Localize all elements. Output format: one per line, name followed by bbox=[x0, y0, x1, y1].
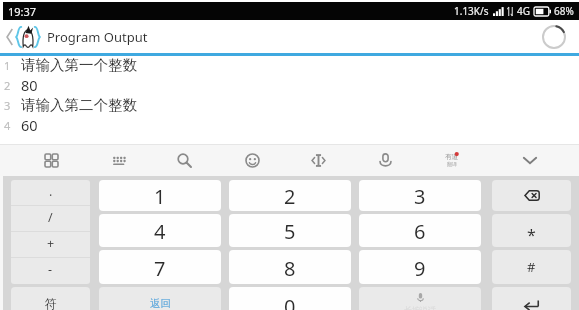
staticText: 符 bbox=[45, 296, 57, 310]
staticText: 19:37 bbox=[8, 4, 37, 19]
staticText: 2 bbox=[4, 78, 11, 93]
button[interactable]: 3 bbox=[359, 180, 481, 211]
button[interactable]: - bbox=[11, 258, 90, 283]
staticText: Program Output bbox=[47, 28, 148, 46]
staticText: 6 bbox=[414, 218, 426, 245]
button[interactable]: Space / voice input bbox=[359, 287, 481, 310]
button[interactable]: * bbox=[492, 214, 571, 247]
staticText: 5 bbox=[284, 218, 296, 245]
button[interactable]: 8 bbox=[229, 250, 351, 284]
staticText: 4G bbox=[517, 4, 530, 18]
button[interactable]: Sticker store bbox=[435, 144, 467, 176]
staticText: 2 bbox=[284, 183, 296, 210]
staticText: 3 bbox=[414, 183, 426, 210]
button[interactable]: Back bbox=[6, 20, 42, 53]
button[interactable]: 符 bbox=[11, 287, 90, 310]
staticText: 4 bbox=[154, 218, 166, 245]
button[interactable]: . bbox=[11, 180, 90, 205]
staticText: 7 bbox=[154, 255, 166, 282]
button[interactable]: 9 bbox=[359, 250, 481, 284]
staticText: 4 bbox=[4, 118, 11, 133]
button[interactable]: Search bbox=[168, 144, 200, 176]
staticText: 60 bbox=[21, 115, 38, 135]
button[interactable]: Enter bbox=[492, 287, 571, 310]
staticText: 8 bbox=[284, 255, 296, 282]
button[interactable]: # bbox=[492, 250, 571, 284]
button[interactable]: 0 bbox=[229, 287, 351, 310]
staticText: . bbox=[49, 183, 53, 200]
button[interactable]: Apps bbox=[35, 144, 67, 176]
staticText: 请输入第二个整数 bbox=[21, 96, 137, 114]
button[interactable]: 2 bbox=[229, 180, 351, 211]
button[interactable]: Backspace bbox=[492, 180, 571, 211]
button[interactable]: Loading bbox=[538, 21, 570, 53]
staticText: 长按说话 bbox=[404, 305, 436, 310]
staticText: 1 bbox=[154, 183, 166, 210]
staticText: 3 bbox=[4, 98, 11, 113]
button[interactable]: Voice input bbox=[369, 144, 401, 176]
button[interactable]: + bbox=[11, 232, 90, 257]
staticText: - bbox=[48, 261, 53, 278]
button[interactable]: 6 bbox=[359, 214, 481, 247]
button[interactable]: / bbox=[11, 206, 90, 231]
staticText: 1 bbox=[4, 58, 11, 73]
button[interactable]: Emoji bbox=[236, 144, 268, 176]
staticText: 返回 bbox=[150, 297, 171, 310]
staticText: 68% bbox=[554, 4, 574, 18]
staticText: + bbox=[47, 235, 55, 252]
button[interactable]: Move cursor bbox=[302, 144, 334, 176]
button[interactable]: Hide keyboard bbox=[514, 144, 546, 176]
button[interactable]: 5 bbox=[229, 214, 351, 247]
button[interactable]: 返回 bbox=[99, 287, 221, 310]
button[interactable]: Keyboard layout bbox=[103, 144, 135, 176]
staticText: 1.13K/s bbox=[454, 4, 489, 18]
button[interactable]: 1 bbox=[99, 180, 221, 211]
button[interactable]: 4 bbox=[99, 214, 221, 247]
staticText: 0 bbox=[284, 293, 296, 310]
staticText: 9 bbox=[414, 255, 426, 282]
staticText: / bbox=[48, 209, 53, 226]
staticText: * bbox=[527, 224, 536, 246]
staticText: 80 bbox=[21, 75, 38, 95]
staticText: # bbox=[527, 258, 536, 276]
button[interactable]: 7 bbox=[99, 250, 221, 284]
staticText: 有道 bbox=[445, 153, 458, 161]
staticText: 请输入第一个整数 bbox=[21, 56, 137, 74]
staticText: 翻译 bbox=[447, 161, 457, 167]
